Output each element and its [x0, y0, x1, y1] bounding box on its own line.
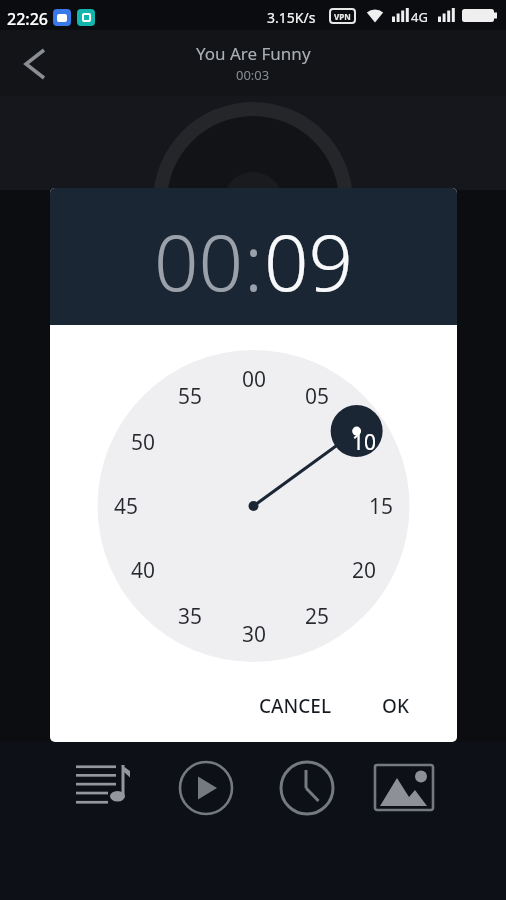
staticText: CANCEL	[259, 693, 332, 719]
staticText: 50	[131, 428, 156, 456]
button[interactable]	[74, 760, 134, 820]
staticText: 4G	[411, 8, 428, 26]
staticText: 3.15K/s	[267, 8, 316, 27]
staticText: :	[244, 208, 264, 314]
staticText: 09	[264, 208, 354, 314]
button[interactable]	[376, 760, 432, 816]
staticText: 30	[242, 620, 267, 648]
staticText: 00:03	[236, 66, 270, 84]
staticText: 10	[352, 428, 377, 456]
staticText: 15	[369, 492, 394, 520]
staticText: 00	[154, 208, 244, 314]
button[interactable]	[8, 40, 56, 88]
staticText: 20	[352, 556, 377, 584]
button[interactable]	[178, 760, 234, 816]
staticText: 40	[131, 556, 156, 584]
staticText: 00	[242, 365, 267, 393]
staticText: 25	[305, 602, 330, 630]
staticText: OK	[382, 693, 409, 719]
staticText: 45	[114, 492, 139, 520]
staticText: 55	[178, 382, 203, 410]
staticText: 35	[178, 602, 203, 630]
staticText: You Are Funny	[196, 42, 311, 65]
button[interactable]	[279, 760, 335, 816]
staticText: 05	[305, 382, 330, 410]
button[interactable]: OK	[365, 682, 425, 730]
button[interactable]: CANCEL	[251, 682, 339, 730]
staticText: VPN	[334, 11, 351, 22]
staticText: 22:26	[7, 8, 48, 30]
